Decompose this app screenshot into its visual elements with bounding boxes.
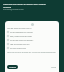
staticText: See your personal info: [10, 47, 26, 49]
staticText: See and download your contacts: [10, 31, 33, 33]
button[interactable]: Cancel: [50, 65, 57, 69]
staticText: View and manage your files: [10, 43, 30, 45]
other: App logo: [31, 23, 34, 26]
staticText: Continue: [9, 66, 16, 68]
staticText: Read, compose and send email: [10, 35, 32, 37]
button[interactable]: Continue: [7, 65, 18, 69]
staticText: This will allow Microsoft 365 to:: [7, 27, 32, 29]
staticText: Cancel: [51, 66, 56, 68]
staticText: Make sure you trust Microsoft 365. You m…: [7, 51, 56, 53]
staticText: Microsoft 365 wants to access your Googl…: [3, 3, 48, 8]
staticText: someone@example.com: [3, 8, 24, 10]
staticText: See and edit events on calendars: [10, 39, 34, 41]
